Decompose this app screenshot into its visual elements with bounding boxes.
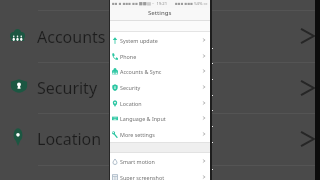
- button[interactable]: Security: [0, 75, 108, 101]
- button[interactable]: Open: [300, 28, 316, 44]
- staticText: Super screenshot: [120, 174, 165, 180]
- button[interactable]: Location: [0, 126, 108, 152]
- staticText: Location: [37, 128, 102, 150]
- button[interactable]: More settings: [110, 126, 210, 142]
- staticText: ▪▪▪ ▪▪▪ 54% ▭: [175, 1, 208, 7]
- button[interactable]: Smart motion: [110, 153, 210, 169]
- staticText: Location: [120, 100, 142, 107]
- staticText: Settings: [148, 9, 172, 17]
- button[interactable]: Open: [300, 80, 316, 96]
- staticText: Phone: [120, 53, 137, 60]
- button[interactable]: Accounts & Sync: [110, 63, 210, 79]
- button[interactable]: System update: [110, 32, 210, 48]
- button[interactable]: Location: [110, 95, 210, 111]
- staticText: ▪▪ ▪ ▪▪▪ ▪▪ ■■▤ ·· 19:21: [112, 1, 168, 7]
- button[interactable]: Phone: [110, 48, 210, 64]
- button[interactable]: Open: [300, 131, 316, 147]
- staticText: Security: [120, 84, 141, 91]
- button[interactable]: Super screenshot: [110, 169, 210, 180]
- button[interactable]: Accounts: [0, 24, 108, 50]
- staticText: More settings: [120, 131, 155, 138]
- staticText: Language & Input: [120, 115, 166, 122]
- button[interactable]: Language & Input: [110, 110, 210, 126]
- staticText: Accounts & Sync: [120, 68, 162, 75]
- staticText: Smart motion: [120, 158, 155, 165]
- staticText: System update: [120, 37, 158, 44]
- staticText: Security: [37, 77, 98, 99]
- button[interactable]: Security: [110, 79, 210, 95]
- staticText: Accounts: [37, 26, 106, 48]
